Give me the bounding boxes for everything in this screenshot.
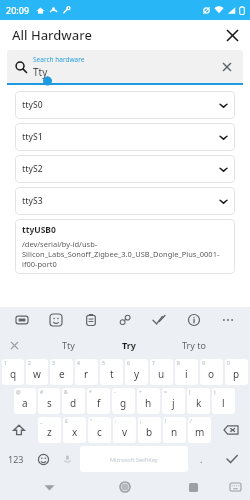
button[interactable]: 9 xyxy=(200,359,223,385)
button[interactable]: = xyxy=(162,388,185,414)
button[interactable]: Translate xyxy=(115,310,135,330)
staticText: x xyxy=(72,425,78,439)
button[interactable]: More options xyxy=(218,310,238,330)
button[interactable]: 3 xyxy=(50,359,73,385)
staticText: s xyxy=(47,396,52,410)
staticText: Try xyxy=(122,339,136,351)
button[interactable]: 4 xyxy=(75,359,98,385)
staticText: v xyxy=(122,425,128,439)
staticText: w xyxy=(33,367,41,381)
staticText: All Hardware xyxy=(12,26,93,44)
button[interactable]: 8 xyxy=(175,359,198,385)
staticText: q xyxy=(10,367,17,381)
button[interactable]: _ xyxy=(38,417,61,443)
button[interactable]: . xyxy=(190,446,213,472)
staticText: 7 xyxy=(152,360,155,367)
button[interactable]: Space xyxy=(80,446,188,472)
staticText: k xyxy=(196,396,202,410)
button[interactable]: 0 xyxy=(225,359,248,385)
button[interactable]: GIF xyxy=(12,310,32,330)
staticText: j xyxy=(172,396,175,410)
button[interactable]: Recent apps xyxy=(181,475,205,499)
button[interactable]: Try xyxy=(116,336,142,354)
staticText: ; xyxy=(140,418,142,425)
staticText: = xyxy=(164,389,167,396)
button[interactable]: ttyS0 xyxy=(15,91,235,119)
button[interactable]: 123 xyxy=(2,446,30,472)
staticText: 1 xyxy=(4,360,7,367)
staticText: ! xyxy=(165,418,167,425)
staticText: & xyxy=(64,389,68,396)
button[interactable]: Stickers xyxy=(46,310,66,330)
button[interactable]: Clear search xyxy=(217,57,237,77)
staticText: / xyxy=(190,418,192,425)
staticText: 8 xyxy=(177,360,180,367)
button[interactable]: Expand suggestions xyxy=(6,337,22,353)
button[interactable]: 6 xyxy=(125,359,148,385)
button[interactable]: 1 xyxy=(2,359,24,385)
staticText: : xyxy=(115,418,117,425)
staticText: e xyxy=(59,367,65,381)
button[interactable]: Done xyxy=(149,310,169,330)
button[interactable]: " xyxy=(88,417,111,443)
button[interactable]: Home xyxy=(113,475,137,499)
button[interactable]: Backspace xyxy=(213,417,248,443)
button[interactable]: Enter xyxy=(215,446,248,472)
staticText: . xyxy=(200,453,203,465)
button[interactable]: ttyUSB0 xyxy=(15,219,235,274)
staticText: _ xyxy=(40,418,43,425)
button[interactable]: Close xyxy=(220,23,244,47)
staticText: i xyxy=(185,367,188,381)
button[interactable]: Try to xyxy=(176,336,212,354)
button[interactable]: Voice input xyxy=(57,446,78,472)
button[interactable]: Tty xyxy=(56,336,81,354)
staticText: 6 xyxy=(127,360,130,367)
button[interactable]: Clipboard xyxy=(81,310,101,330)
staticText: ttyS3 xyxy=(22,195,43,207)
staticText: h xyxy=(145,396,152,410)
button[interactable]: Switch keyboard xyxy=(224,476,246,498)
staticText: # xyxy=(40,389,44,396)
button[interactable]: ttyS1 xyxy=(15,123,235,151)
staticText: if00-port0 xyxy=(22,259,57,269)
button[interactable]: ttyS3 xyxy=(15,187,235,215)
button[interactable]: + xyxy=(137,388,160,414)
button[interactable]: ) xyxy=(212,388,235,414)
staticText: 0 xyxy=(227,360,230,367)
button[interactable]: Info xyxy=(184,310,204,330)
staticText: Tty xyxy=(62,339,75,351)
button[interactable]: ; xyxy=(138,417,161,443)
button[interactable]: 2 xyxy=(26,359,48,385)
button[interactable]: Shift xyxy=(2,417,36,443)
button[interactable]: : xyxy=(113,417,136,443)
staticText: ( xyxy=(189,389,191,396)
button[interactable]: 5 xyxy=(100,359,123,385)
staticText: 4 xyxy=(77,360,80,367)
button[interactable]: @ xyxy=(14,388,36,414)
button[interactable]: ! xyxy=(163,417,186,443)
button[interactable]: 7 xyxy=(150,359,173,385)
button[interactable]: ttyS2 xyxy=(15,155,235,183)
button[interactable]: / xyxy=(188,417,211,443)
staticText: 5 xyxy=(102,360,105,367)
button[interactable]: Emoji xyxy=(32,446,55,472)
staticText: c xyxy=(97,425,102,439)
staticText: + xyxy=(139,389,142,396)
staticText: @ xyxy=(16,389,21,396)
staticText: l xyxy=(222,396,225,410)
staticText: 123 xyxy=(8,453,24,465)
staticText: 20:09 xyxy=(6,4,30,16)
staticText: ttyS2 xyxy=(22,163,43,175)
staticText: Microsoft SwiftKey xyxy=(110,456,158,463)
staticText: Search hardware xyxy=(33,55,85,64)
staticText: Silicon_Labs_Sonoff_Zigbee_3.0_USB_Dongl… xyxy=(22,249,220,259)
button[interactable]: - xyxy=(112,388,135,414)
button[interactable]: & xyxy=(62,388,85,414)
button[interactable]: ( xyxy=(187,388,210,414)
button[interactable]: £ xyxy=(63,417,86,443)
button[interactable]: Back xyxy=(37,475,61,499)
button[interactable]: * xyxy=(87,388,110,414)
button[interactable]: # xyxy=(38,388,60,414)
staticText: ) xyxy=(214,389,216,396)
button[interactable]: Search hardware xyxy=(7,50,243,83)
